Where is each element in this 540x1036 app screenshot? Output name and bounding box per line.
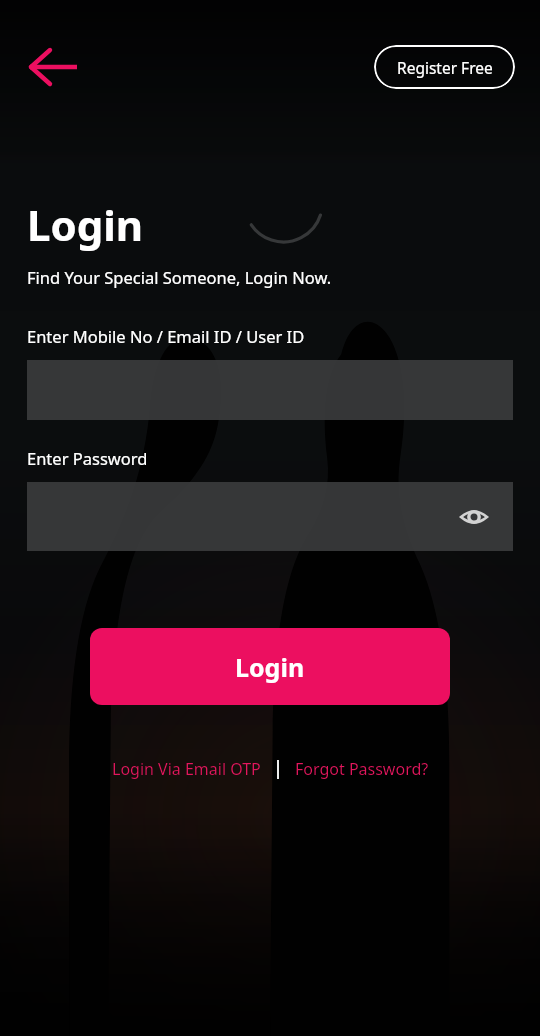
staticText: Enter Mobile No / Email ID / User ID	[27, 325, 305, 347]
button[interactable]: Register Free	[374, 45, 515, 89]
staticText: Login Via Email OTP	[112, 758, 261, 780]
button[interactable]: Login Via Email OTP	[109, 754, 264, 784]
staticText: Login	[235, 650, 305, 684]
staticText: Find Your Special Someone, Login Now.	[27, 266, 332, 288]
button[interactable]: Show password	[453, 496, 495, 538]
button[interactable]: Show password	[27, 482, 513, 551]
staticText: Enter Password	[27, 447, 148, 469]
staticText: Forgot Password?	[295, 758, 429, 780]
button[interactable]: Forgot Password?	[292, 754, 432, 784]
staticText: Login	[27, 196, 144, 253]
button[interactable]: Back	[17, 44, 89, 90]
staticText: Register Free	[397, 57, 493, 78]
button[interactable]: Login	[90, 628, 450, 705]
